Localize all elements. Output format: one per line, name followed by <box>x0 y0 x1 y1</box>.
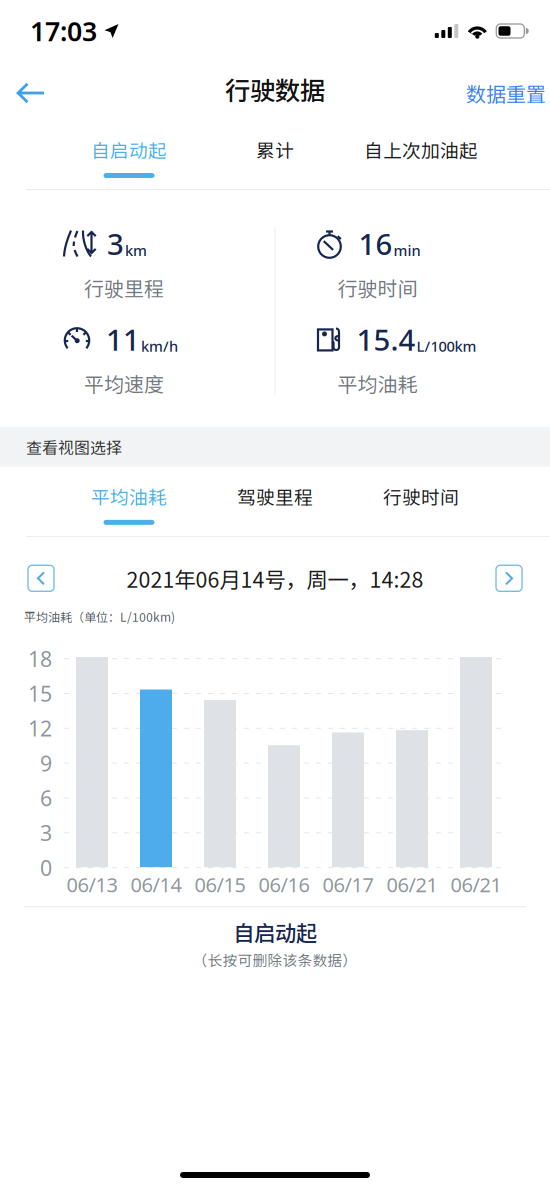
staticText: 12 <box>28 714 52 742</box>
staticText: 06/21 <box>386 871 437 898</box>
button[interactable]: 驾驶里程 <box>202 467 348 536</box>
staticText: 数据重置 <box>466 78 546 107</box>
staticText: 行驶时间 <box>337 273 417 302</box>
staticText: 累计 <box>256 136 294 163</box>
staticText: 06/16 <box>258 871 309 898</box>
staticText: 6 <box>40 784 52 812</box>
button[interactable]: Next <box>496 565 522 591</box>
staticText: 11 <box>106 320 140 359</box>
button[interactable]: 平均油耗 <box>56 467 202 536</box>
staticText: 行驶数据 <box>225 71 325 107</box>
button[interactable]: 数据重置 <box>466 66 546 119</box>
staticText: 06/21 <box>450 871 501 898</box>
staticText: 行驶里程 <box>84 273 164 302</box>
button[interactable]: 累计 <box>202 124 348 189</box>
staticText: 平均速度 <box>84 369 164 398</box>
staticText: （长按可删除该条数据） <box>192 949 357 970</box>
staticText: L/100km <box>416 336 476 356</box>
button[interactable]: Back <box>1 69 61 117</box>
staticText: 驾驶里程 <box>237 483 313 510</box>
staticText: 3 <box>40 819 52 847</box>
staticText: 平均油耗 <box>337 369 417 398</box>
staticText: 15.4 <box>356 320 415 359</box>
staticText: 0 <box>40 853 52 882</box>
staticText: 行驶时间 <box>383 483 459 510</box>
staticText: 自启动起 <box>91 136 167 163</box>
staticText: 平均油耗 <box>91 483 167 510</box>
staticText: 平均油耗（单位：L/100km) <box>24 608 175 625</box>
staticText: 查看视图选择 <box>26 435 122 458</box>
staticText: 16 <box>358 224 392 263</box>
staticText: 18 <box>28 644 52 673</box>
staticText: 17:03 <box>30 13 97 49</box>
button[interactable]: Previous <box>28 565 54 591</box>
staticText: 3 <box>107 224 124 263</box>
button[interactable]: 自启动起 <box>56 124 202 189</box>
button[interactable]: 自上次加油起 <box>348 124 494 189</box>
staticText: 15 <box>28 679 52 708</box>
staticText: 9 <box>40 749 52 777</box>
staticText: 06/15 <box>194 871 245 898</box>
staticText: km/h <box>141 336 178 356</box>
button[interactable]: 行驶时间 <box>348 467 494 536</box>
staticText: 06/13 <box>66 871 117 898</box>
staticText: 自上次加油起 <box>364 136 478 163</box>
staticText: 自启动起 <box>233 916 317 947</box>
staticText: km <box>125 240 147 260</box>
staticText: 06/14 <box>130 871 181 898</box>
staticText: min <box>393 240 420 260</box>
staticText: 06/17 <box>322 871 373 898</box>
staticText: 2021年06月14号，周一，14:28 <box>126 563 423 594</box>
